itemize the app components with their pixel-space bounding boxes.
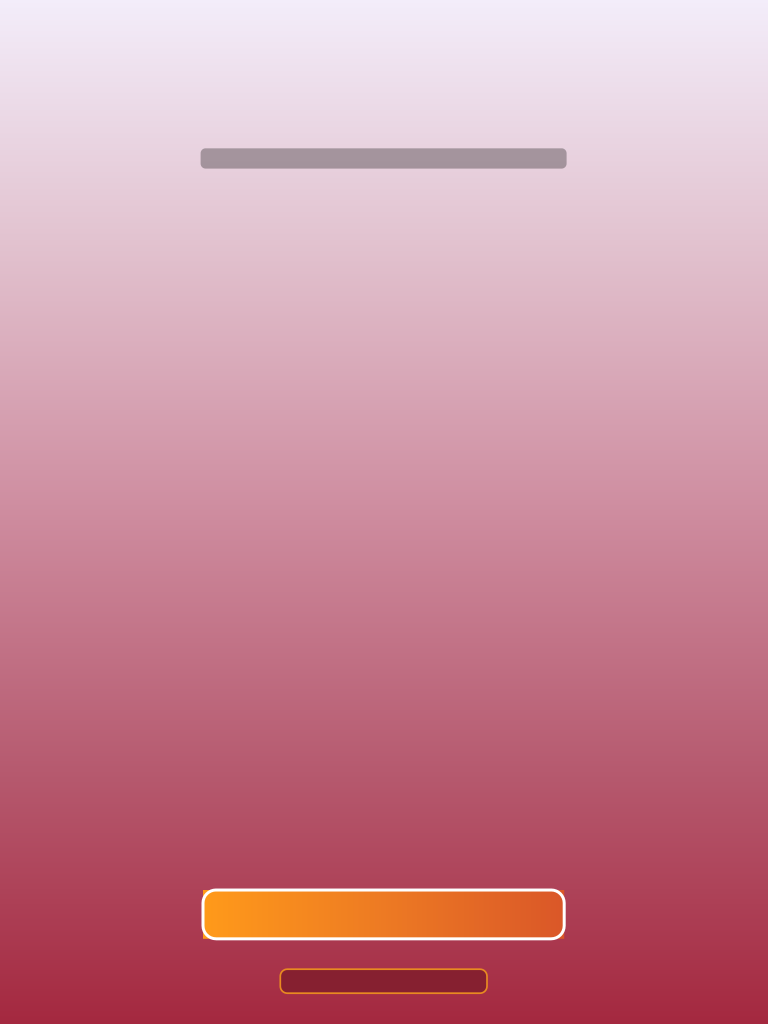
button[interactable]: Restore purchase: [280, 969, 487, 993]
button[interactable]: Continue: [203, 890, 564, 939]
